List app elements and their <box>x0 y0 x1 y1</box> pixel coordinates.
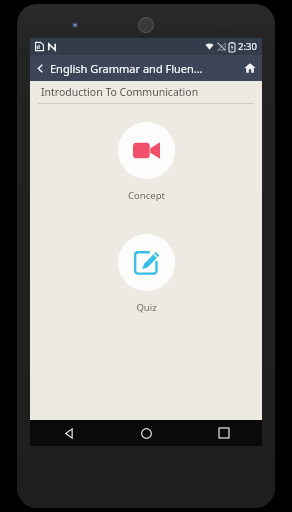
button[interactable]: Back <box>30 420 108 446</box>
button[interactable]: Quiz <box>103 234 189 314</box>
button[interactable]: Home <box>108 420 185 446</box>
staticText: Concept <box>128 189 165 202</box>
staticText: English Grammar and Fluen… <box>50 61 238 76</box>
button[interactable]: Back <box>30 55 50 81</box>
button[interactable]: Concept video <box>103 122 189 202</box>
staticText: Quiz <box>136 301 157 314</box>
staticText: 2:30 <box>238 40 257 53</box>
staticText: Introduction To Communication <box>41 85 199 99</box>
button[interactable]: Recent apps <box>185 420 262 446</box>
button[interactable]: Home <box>238 55 262 81</box>
